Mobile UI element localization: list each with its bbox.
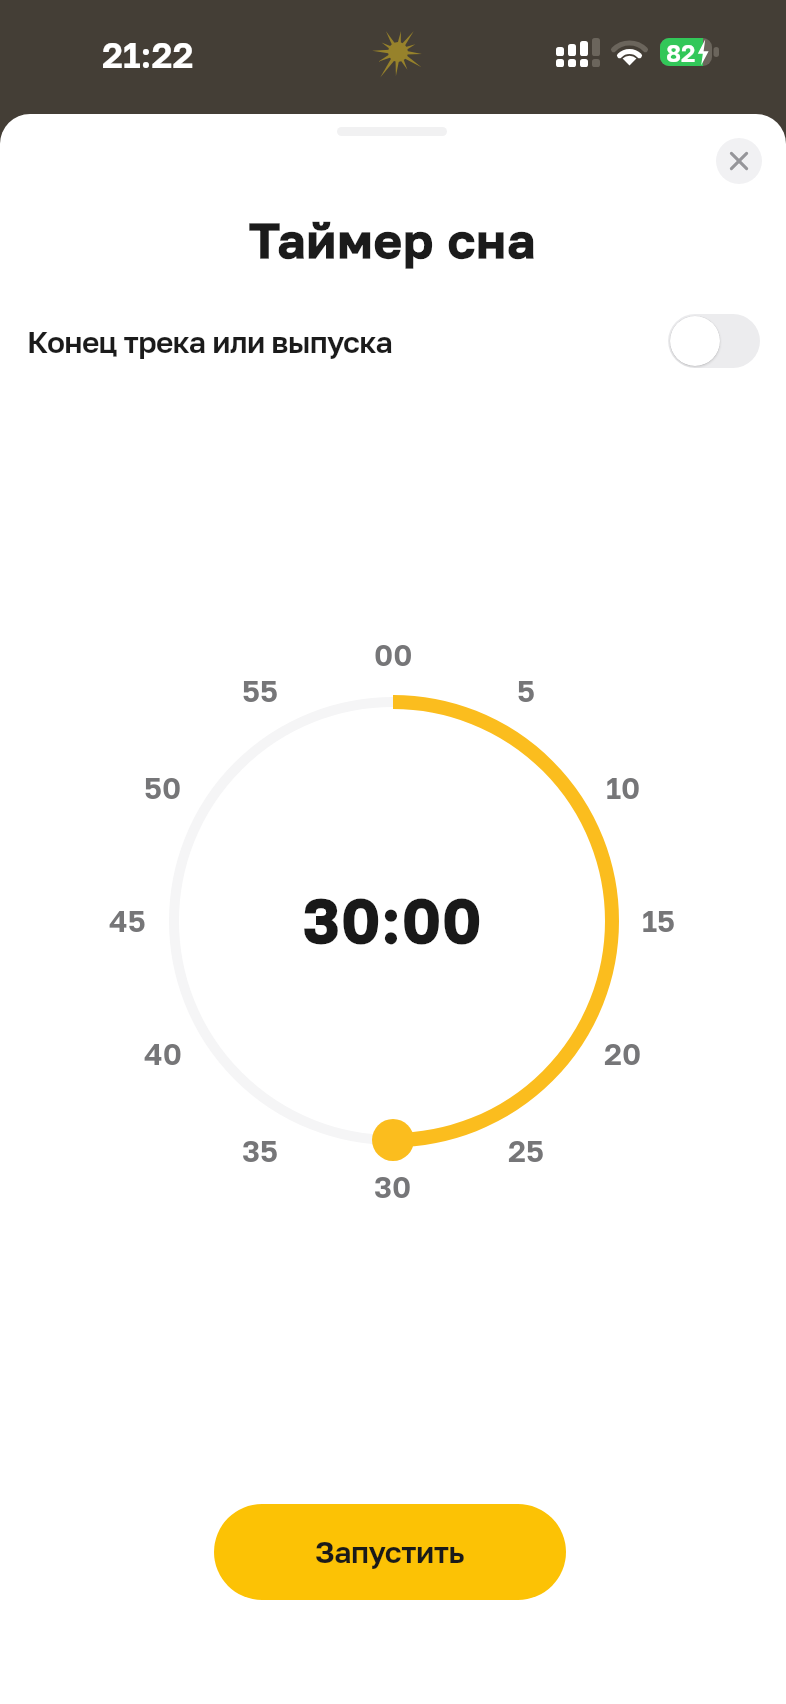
staticText: Таймер сна xyxy=(249,210,537,268)
staticText: 35 xyxy=(242,1133,279,1169)
staticText: 45 xyxy=(109,903,146,939)
staticText: 40 xyxy=(144,1036,183,1072)
button[interactable] xyxy=(716,138,762,184)
staticText: Конец трека или выпуска xyxy=(27,324,393,360)
staticText: 10 xyxy=(606,770,641,806)
staticText: 00 xyxy=(374,637,413,673)
button[interactable]: Запустить xyxy=(214,1504,566,1600)
staticText: 15 xyxy=(642,903,676,939)
staticText: 21:22 xyxy=(102,34,194,76)
staticText: 30:00 xyxy=(303,883,483,956)
staticText: 50 xyxy=(144,770,182,806)
button[interactable]: Конец трека или выпуска xyxy=(0,301,786,382)
staticText: 30 xyxy=(374,1169,412,1205)
staticText: 55 xyxy=(242,673,278,709)
staticText: 20 xyxy=(604,1036,642,1072)
staticText: 5 xyxy=(517,673,535,709)
staticText: 82 xyxy=(666,38,696,67)
staticText: 25 xyxy=(508,1133,544,1169)
staticText: Запустить xyxy=(315,1534,465,1570)
